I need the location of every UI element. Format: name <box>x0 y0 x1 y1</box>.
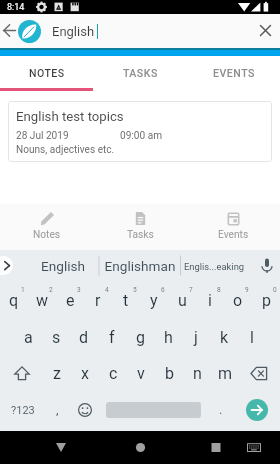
staticText: Notes <box>33 229 61 241</box>
button[interactable]: Back <box>41 431 81 464</box>
staticText: i <box>208 291 212 310</box>
staticText: a <box>24 328 33 347</box>
button[interactable]: y <box>140 282 168 319</box>
button[interactable]: Backspace <box>237 355 280 392</box>
staticText: Englis...eaking <box>169 261 259 272</box>
staticText: c <box>109 364 118 383</box>
button[interactable]: g <box>126 319 154 355</box>
button[interactable]: Tasks <box>94 204 187 250</box>
staticText: Nouns, adjectives etc. <box>16 144 115 156</box>
button[interactable]: Shift <box>0 355 43 392</box>
staticText: w <box>36 291 49 310</box>
staticText: 8:14 <box>7 2 25 13</box>
staticText: TASKS <box>123 67 158 79</box>
button[interactable]: p <box>252 282 280 319</box>
staticText: NOTES <box>29 67 65 79</box>
button[interactable]: Notes <box>0 204 94 250</box>
staticText: d <box>79 328 89 347</box>
staticText: Events <box>218 229 249 241</box>
staticText: 6 <box>161 286 165 294</box>
button[interactable]: n <box>183 355 211 392</box>
button[interactable]: English test topics <box>8 101 272 162</box>
button[interactable]: d <box>70 319 98 355</box>
staticText: Englishman <box>95 258 185 274</box>
button[interactable]: Events <box>187 204 280 250</box>
button[interactable]: x <box>71 355 99 392</box>
button[interactable]: r <box>84 282 112 319</box>
staticText: r <box>95 291 101 310</box>
staticText: 4 <box>105 286 109 294</box>
button[interactable]: u <box>168 282 196 319</box>
button[interactable]: h <box>154 319 182 355</box>
button[interactable]: q <box>0 282 28 319</box>
staticText: English <box>18 258 108 274</box>
button[interactable]: . <box>206 392 234 428</box>
staticText: l <box>250 328 254 347</box>
button[interactable]: l <box>238 319 266 355</box>
staticText: 1 <box>21 286 25 294</box>
button[interactable]: z <box>43 355 71 392</box>
staticText: 5 <box>133 286 137 294</box>
staticText: t <box>123 291 129 310</box>
button[interactable]: , <box>43 392 71 428</box>
staticText: EVENTS <box>213 67 255 79</box>
staticText: o <box>233 291 243 310</box>
button[interactable]: Recent apps <box>196 431 236 464</box>
button[interactable]: Back <box>0 14 19 48</box>
button[interactable]: a <box>14 319 42 355</box>
staticText: g <box>136 328 145 347</box>
button[interactable]: Clear search <box>250 14 280 48</box>
button[interactable]: v <box>127 355 155 392</box>
button[interactable]: j <box>182 319 210 355</box>
button[interactable]: More suggestions <box>0 256 13 275</box>
staticText: z <box>53 364 61 383</box>
button[interactable]: Emoji <box>71 392 99 428</box>
button[interactable]: Switch keyboard <box>240 431 270 464</box>
staticText: b <box>165 364 174 383</box>
button[interactable]: t <box>112 282 140 319</box>
staticText: y <box>150 291 158 310</box>
staticText: 2 <box>49 286 53 294</box>
staticText: u <box>178 291 187 310</box>
button[interactable]: e <box>56 282 84 319</box>
button[interactable]: w <box>28 282 56 319</box>
staticText: 0 <box>273 286 277 294</box>
staticText: 8 <box>217 286 221 294</box>
button[interactable]: TASKS <box>94 56 187 88</box>
staticText: ?123 <box>11 404 35 417</box>
staticText: 3 <box>77 286 81 294</box>
button[interactable]: f <box>98 319 126 355</box>
staticText: 28 Jul 2019 <box>16 130 69 142</box>
staticText: 7 <box>189 286 193 294</box>
staticText: m <box>218 364 233 383</box>
button[interactable]: c <box>99 355 127 392</box>
staticText: 09:00 am <box>120 130 162 142</box>
button[interactable]: EVENTS <box>187 56 280 88</box>
button[interactable]: NOTES <box>0 56 94 88</box>
staticText: p <box>262 291 271 310</box>
staticText: x <box>81 364 89 383</box>
staticText: j <box>194 328 198 347</box>
staticText: English test topics <box>16 109 124 124</box>
button[interactable]: b <box>155 355 183 392</box>
staticText: 9 <box>245 286 249 294</box>
staticText: . <box>219 402 223 417</box>
button[interactable]: m <box>211 355 239 392</box>
staticText: Tasks <box>127 229 154 241</box>
staticText: , <box>56 402 59 417</box>
staticText: English <box>52 24 95 39</box>
button[interactable]: k <box>210 319 238 355</box>
staticText: f <box>109 328 115 347</box>
staticText: s <box>52 328 61 347</box>
button[interactable]: Home <box>120 431 160 464</box>
button[interactable]: i <box>196 282 224 319</box>
button[interactable]: s <box>42 319 70 355</box>
button[interactable]: Voice input <box>254 251 280 281</box>
staticText: v <box>137 364 145 383</box>
staticText: k <box>220 328 229 347</box>
staticText: e <box>66 291 75 310</box>
button[interactable]: o <box>224 282 252 319</box>
button[interactable]: ?123 <box>0 392 43 428</box>
button[interactable]: Enter <box>246 399 268 421</box>
